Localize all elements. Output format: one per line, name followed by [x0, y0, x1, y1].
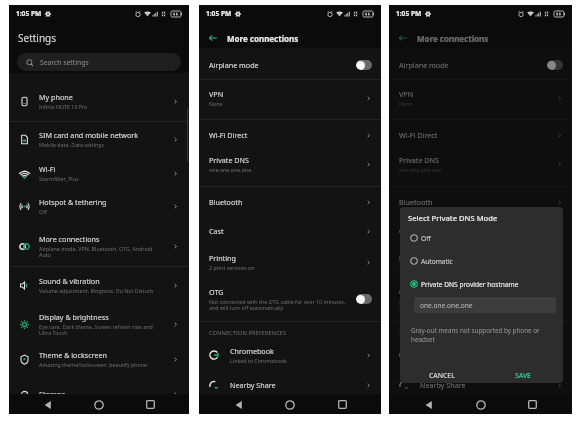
staticText: Private DNS [209, 155, 250, 165]
staticText: My phone [39, 92, 73, 102]
button[interactable]: SAVE [511, 367, 535, 383]
button[interactable]: More connections [9, 232, 189, 260]
button[interactable]: Private DNS [389, 154, 572, 174]
button[interactable]: Airplane mode [389, 55, 572, 74]
staticText: More connections [227, 33, 299, 44]
staticText: Eye care, Dark theme, Screen refresh rat… [39, 323, 158, 337]
button[interactable]: Search settings [17, 53, 181, 71]
other: Back [208, 33, 218, 43]
button[interactable]: Home [469, 395, 493, 414]
staticText: 1:05 PM [16, 9, 42, 18]
button[interactable]: CANCEL [425, 367, 459, 383]
staticText: Printing [399, 253, 426, 263]
staticText: Hotspot & tethering [39, 197, 107, 207]
button[interactable]: VPN [199, 88, 381, 108]
button[interactable]: Automatic [400, 253, 563, 269]
staticText: one.one.one.one [209, 166, 252, 173]
button[interactable]: Private DNS [199, 154, 381, 174]
button[interactable]: Back [389, 28, 572, 48]
button[interactable]: Recents [138, 395, 162, 414]
button[interactable]: Storage [9, 383, 189, 394]
staticText: Airplane mode, VPN, Bluetooth, OTG, Andr… [39, 245, 158, 259]
button[interactable]: OTG [199, 286, 381, 312]
button[interactable]: Recents [520, 395, 544, 414]
staticText: SAVE [515, 371, 531, 380]
staticText: Cast [209, 226, 224, 236]
staticText: OTG [399, 287, 414, 297]
button[interactable]: Display & brightness [9, 310, 189, 338]
staticText: 2 print services on [209, 264, 255, 271]
button[interactable]: Bluetooth [199, 195, 381, 209]
staticText: Automatic [421, 257, 453, 266]
staticText: Airplane mode [399, 60, 449, 70]
staticText: More connections [417, 33, 489, 44]
button[interactable]: OTG [389, 286, 572, 312]
button[interactable]: SIM card and mobile network [9, 128, 189, 150]
button[interactable]: Home [278, 395, 302, 414]
staticText: Cast [399, 226, 414, 236]
button[interactable]: Chromebook [389, 344, 572, 366]
staticText: Wi-Fi [39, 164, 56, 174]
other: Back [398, 33, 408, 43]
staticText: VPN [399, 89, 414, 99]
button[interactable]: Back [417, 395, 441, 414]
staticText: Off [421, 234, 431, 243]
staticText: OTG [209, 287, 224, 297]
staticText: Select Private DNS Mode [408, 213, 498, 223]
staticText: 1:05 PM [396, 9, 422, 18]
button[interactable]: Home [87, 395, 111, 414]
button[interactable]: Back [227, 395, 251, 414]
button[interactable]: Nearby Share [199, 377, 381, 393]
button[interactable]: Back [417, 395, 441, 414]
staticText: Wi-Fi Direct [399, 130, 438, 140]
button[interactable]: Off [400, 230, 563, 246]
button[interactable]: Nearby Share [389, 377, 572, 393]
staticText: Nearby Share [420, 380, 466, 390]
staticText: Stormfiber_Plus [39, 175, 79, 182]
button[interactable]: Back [36, 395, 60, 414]
staticText: one.one.one.one [420, 301, 473, 310]
staticText: VPN [209, 89, 224, 99]
button[interactable]: Cast [199, 224, 381, 238]
staticText: Private DNS provider hostname [421, 280, 519, 289]
staticText: Off [39, 208, 47, 215]
staticText: Volume adjustment, Ringtone, Do Not Dist… [39, 287, 154, 294]
staticText: Wi-Fi Direct [209, 130, 248, 140]
button[interactable]: My phone [9, 90, 189, 112]
staticText: CONNECTION PREFERENCES [399, 329, 477, 337]
staticText: None [399, 100, 413, 107]
staticText: CANCEL [429, 371, 455, 380]
staticText: Storage [39, 389, 66, 394]
button[interactable]: Wi-Fi Direct [389, 128, 572, 142]
button[interactable]: Back [199, 28, 381, 48]
staticText: More connections [39, 234, 100, 244]
button[interactable]: Bluetooth [389, 195, 572, 209]
button[interactable]: one.one.one.one [414, 297, 556, 313]
button[interactable]: Home [469, 395, 493, 414]
staticText: Gray-out means not supported by phone or… [411, 326, 548, 344]
staticText: Bluetooth [209, 197, 243, 207]
button[interactable]: Sound & vibration [9, 274, 189, 296]
button[interactable]: Recents [330, 395, 354, 414]
button[interactable]: Hotspot & tethering [9, 195, 189, 217]
button[interactable]: Chromebook [199, 344, 381, 366]
staticText: Search settings [40, 58, 89, 67]
staticText: Amazing theme/lockscreen ,beautify phone [39, 361, 147, 368]
button[interactable]: Printing [199, 252, 381, 272]
staticText: Display & brightness [39, 312, 109, 322]
button[interactable]: Theme & lockscreen [9, 348, 189, 370]
button[interactable]: Wi-Fi [9, 162, 189, 184]
button[interactable]: Private DNS provider hostname [400, 276, 563, 292]
staticText: None [209, 100, 223, 107]
button[interactable]: Recents [520, 395, 544, 414]
button[interactable]: Cast [389, 224, 572, 238]
button[interactable]: Airplane mode [199, 55, 381, 74]
button[interactable]: Printing [389, 252, 572, 272]
staticText: Nearby Share [230, 380, 276, 390]
staticText: Linked to Chromebook [230, 357, 287, 364]
button[interactable]: VPN [389, 88, 572, 108]
staticText: Settings [18, 31, 57, 45]
staticText: Not connected with the OTG cable for ove… [399, 298, 542, 312]
button[interactable]: Wi-Fi Direct [199, 128, 381, 142]
